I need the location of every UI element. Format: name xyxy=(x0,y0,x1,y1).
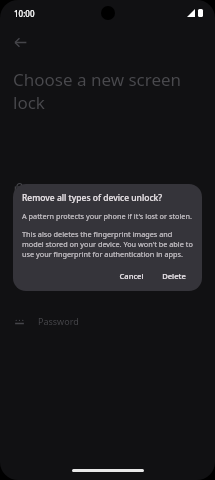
staticText: Password xyxy=(38,315,79,327)
button[interactable]: None xyxy=(0,172,215,202)
staticText: 10:00 xyxy=(14,8,35,19)
button[interactable]: Back xyxy=(6,28,34,56)
staticText: Remove all types of device unlock? xyxy=(22,192,163,204)
staticText: This also deletes the fingerprint images… xyxy=(22,229,193,259)
button[interactable]: Delete xyxy=(155,267,193,285)
staticText: Choose a new screen lock xyxy=(13,68,193,114)
button[interactable]: Password xyxy=(0,306,215,336)
staticText: None xyxy=(38,181,61,193)
button[interactable]: Cancel xyxy=(112,267,151,285)
staticText: Delete xyxy=(162,271,186,281)
staticText: Cancel xyxy=(119,271,144,281)
staticText: A pattern protects your phone if it's lo… xyxy=(22,211,192,221)
